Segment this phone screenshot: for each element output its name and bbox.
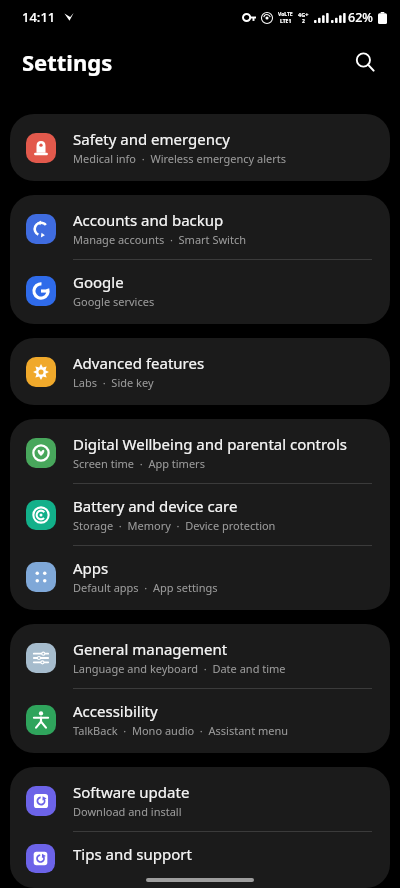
staticText: Storage · Memory · Device protection [73,518,276,533]
button[interactable]: Digital Wellbeing and parental controls [10,422,390,483]
staticText: LTE1 [280,18,292,25]
staticText: Medical info · Wireless emergency alerts [73,151,287,166]
staticText: Google services [73,294,155,309]
staticText: Default apps · App settings [73,580,218,595]
button[interactable]: Software update [10,770,390,831]
staticText: Accounts and backup [73,210,224,230]
button[interactable]: Tips and support [10,832,390,885]
staticText: Software update [73,782,190,802]
staticText: Google [73,272,124,292]
staticText: 62% [348,9,373,26]
staticText: Safety and emergency [73,129,230,149]
staticText: Tips and support [73,844,192,864]
button[interactable]: Accounts and backup [10,198,390,259]
staticText: Apps [73,558,109,578]
staticText: VoLTE [278,11,293,18]
button[interactable]: General management [10,627,390,688]
button[interactable]: Safety and emergency [10,117,390,178]
staticText: Advanced features [73,353,205,373]
staticText: Battery and device care [73,496,238,516]
staticText: 2 [302,18,305,25]
button[interactable]: Accessibility [10,689,390,750]
staticText: Labs · Side key [73,375,154,390]
button[interactable]: Search settings [344,41,386,83]
button[interactable]: Apps [10,546,390,607]
staticText: Manage accounts · Smart Switch [73,232,246,247]
staticText: Digital Wellbeing and parental controls [73,434,347,454]
staticText: 4G+ [298,11,309,18]
button[interactable]: Advanced features [10,341,390,402]
staticText: Settings [22,47,113,77]
staticText: TalkBack · Mono audio · Assistant menu [73,723,289,738]
staticText: General management [73,639,228,659]
staticText: Download and install [73,804,182,819]
button[interactable]: Google [10,260,390,321]
staticText: 14:11 [22,8,56,26]
staticText: Screen time · App timers [73,456,205,471]
button[interactable]: Battery and device care [10,484,390,545]
staticText: Accessibility [73,701,158,721]
staticText: Language and keyboard · Date and time [73,661,286,676]
